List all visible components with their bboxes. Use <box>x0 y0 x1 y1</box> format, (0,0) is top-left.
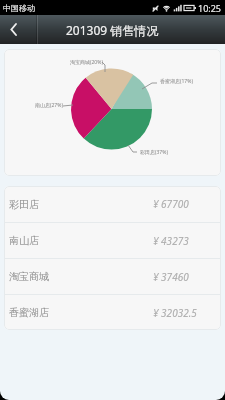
staticText: ¥ 67700 <box>153 197 189 211</box>
staticText: 201309 销售情况 <box>66 22 159 38</box>
button[interactable]: 香蜜湖店 <box>4 295 221 330</box>
button[interactable]: 淘宝商城 <box>4 259 221 294</box>
button[interactable]: 南山店 <box>4 223 221 258</box>
staticText: 中国移动 <box>3 3 35 13</box>
staticText: 香蜜湖店(17%) <box>160 78 193 85</box>
staticText: 彩田店(37%) <box>140 149 168 156</box>
staticText: 10:25 <box>198 2 222 14</box>
staticText: 彩田店 <box>9 198 39 211</box>
staticText: ¥ 37460 <box>153 270 189 284</box>
staticText: 南山店 <box>9 234 39 247</box>
staticText: 淘宝商城 <box>9 270 49 283</box>
staticText: ¥ 32032.5 <box>153 306 197 320</box>
button[interactable]: 彩田店 <box>4 186 221 222</box>
button[interactable]: Back <box>0 15 26 44</box>
staticText: ¥ 43273 <box>153 234 189 248</box>
staticText: 香蜜湖店 <box>9 306 49 319</box>
staticText: 南山店(27%) <box>35 102 63 109</box>
staticText: 淘宝商城(20%) <box>70 59 103 66</box>
